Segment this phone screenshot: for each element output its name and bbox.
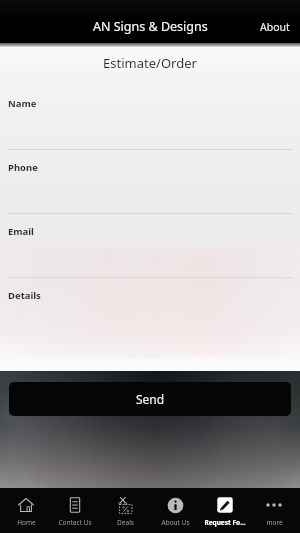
button[interactable]: Home [2,488,50,533]
button[interactable]: Name [0,86,300,150]
staticText: Contact Us [58,518,92,527]
button[interactable]: more [250,488,298,533]
staticText: more [266,518,283,527]
staticText: AN Signs & Designs [93,18,208,35]
button[interactable]: Request Fo... [201,488,249,533]
staticText: Name [8,97,37,110]
staticText: About [260,20,290,34]
button[interactable]: Details [0,278,300,371]
staticText: Send [136,391,165,407]
staticText: About Us [161,518,190,527]
button[interactable]: Contact Us [51,488,99,533]
staticText: Request Fo... [204,518,246,527]
staticText: Deals [117,518,134,527]
button[interactable]: Phone [0,150,300,214]
button[interactable]: Send [9,382,291,416]
staticText: Email [8,225,34,238]
button[interactable]: About [250,16,300,38]
staticText: Estimate/Order [0,54,300,72]
staticText: Details [8,289,41,302]
staticText: Home [17,518,36,527]
button[interactable]: Deals [101,488,149,533]
staticText: Phone [8,161,38,174]
button[interactable]: Email [0,214,300,278]
button[interactable]: About Us [151,488,199,533]
